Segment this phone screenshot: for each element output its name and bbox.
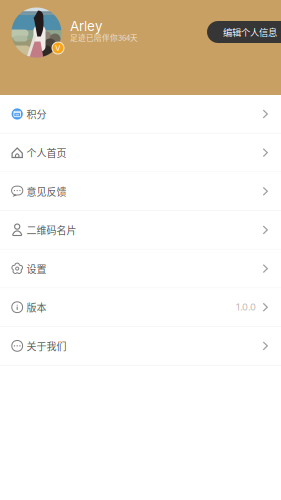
staticText: Arley bbox=[70, 18, 102, 34]
staticText: 意见反馈 bbox=[27, 184, 67, 198]
staticText: V bbox=[55, 43, 61, 53]
staticText: 积分 bbox=[27, 107, 47, 121]
staticText: 版本 bbox=[27, 300, 47, 314]
staticText: 二维码名片 bbox=[27, 223, 77, 237]
staticText: 1.0.0 bbox=[236, 302, 256, 313]
staticText: 设置 bbox=[27, 261, 47, 276]
button[interactable]: 个人首页 bbox=[0, 134, 281, 172]
button[interactable]: 积分 bbox=[0, 95, 281, 134]
button[interactable]: 版本 bbox=[0, 288, 281, 327]
staticText: 编辑个人信息 bbox=[223, 25, 277, 39]
button[interactable]: 意见反馈 bbox=[0, 172, 281, 211]
staticText: 个人首页 bbox=[27, 145, 67, 160]
button[interactable]: 关于我们 bbox=[0, 327, 281, 365]
staticText: 足迹已陪伴你364天 bbox=[70, 32, 138, 43]
button[interactable]: 编辑个人信息 bbox=[207, 21, 281, 43]
staticText: 关于我们 bbox=[27, 339, 67, 353]
button[interactable]: 二维码名片 bbox=[0, 211, 281, 249]
button[interactable]: 设置 bbox=[0, 250, 281, 288]
